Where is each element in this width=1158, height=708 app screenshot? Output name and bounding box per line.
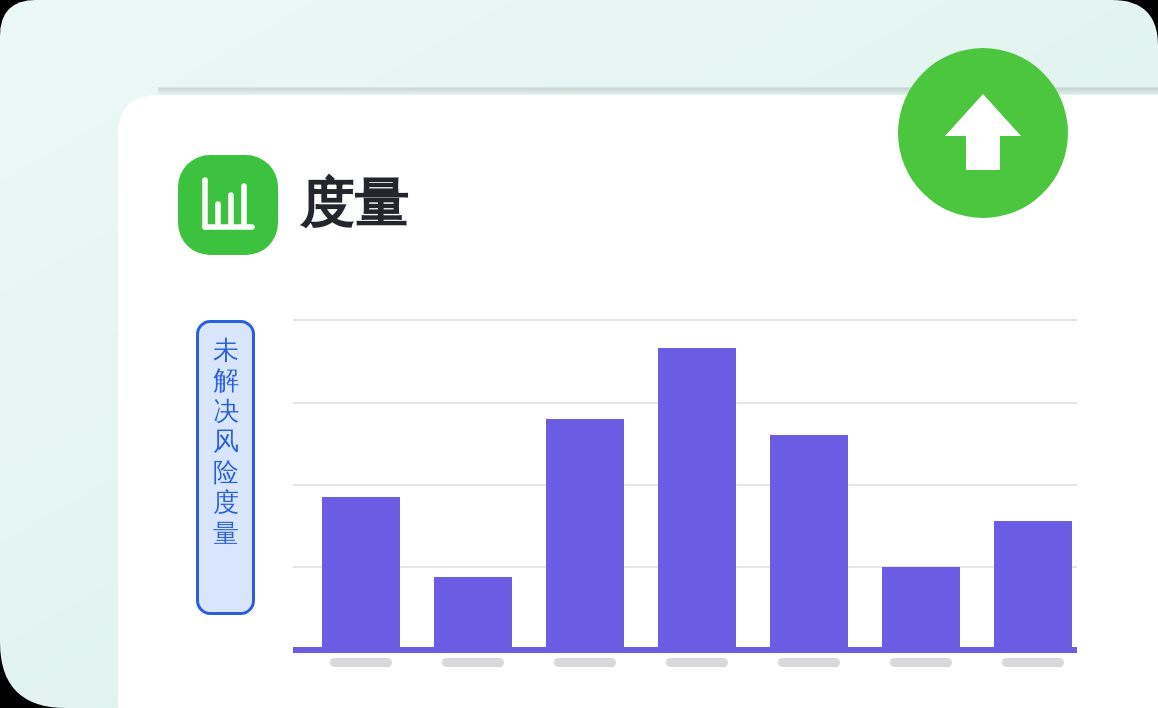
button[interactable]: Upload [898, 48, 1068, 218]
staticText: 解 [213, 364, 239, 395]
staticText: 风 [213, 425, 239, 456]
button[interactable]: 未解决风险度量 [196, 320, 255, 615]
button[interactable]: Metrics [178, 155, 278, 255]
staticText: 险 [213, 456, 239, 487]
staticText: 未 [213, 334, 239, 365]
button[interactable]: 度量 [300, 168, 520, 240]
staticText: 决 [213, 395, 239, 426]
staticText: 度量 [300, 170, 408, 238]
staticText: 量 [213, 517, 239, 548]
staticText: 度 [213, 486, 239, 517]
